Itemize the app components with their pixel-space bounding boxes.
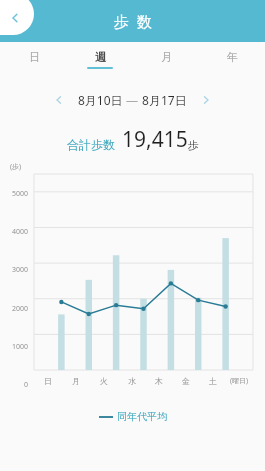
button[interactable]: Previous period [48, 89, 70, 111]
staticText: 合計歩数 [67, 137, 115, 152]
button[interactable]: 年 [199, 42, 265, 77]
staticText: 水 [128, 376, 136, 386]
staticText: 週 [95, 50, 106, 64]
button[interactable]: 日 [0, 42, 67, 77]
staticText: 2000 [0, 304, 28, 314]
button[interactable]: Back [0, 0, 34, 35]
staticText: 金 [182, 376, 190, 386]
staticText: 月 [161, 50, 172, 64]
staticText: 19,415 [122, 125, 188, 154]
staticText: 8月10日 [78, 92, 126, 108]
staticText: 4000 [0, 227, 28, 237]
staticText: 5000 [0, 189, 28, 199]
staticText: 歩 数 [114, 11, 152, 31]
staticText: (歩) [10, 162, 22, 172]
staticText: 同年代平均 [117, 410, 167, 423]
button[interactable]: Next period [195, 89, 217, 111]
staticText: 3000 [0, 265, 28, 275]
staticText: 歩 [188, 138, 199, 152]
staticText: 土 [209, 376, 217, 386]
button[interactable]: 月 [133, 42, 199, 77]
button[interactable]: 週 [67, 42, 133, 77]
staticText: 木 [155, 376, 163, 386]
staticText: 1000 [0, 342, 28, 352]
staticText: 0 [0, 380, 28, 390]
staticText: 日 [29, 50, 40, 64]
staticText: 火 [100, 376, 108, 386]
staticText: 年 [227, 50, 238, 64]
staticText: (曜日) [230, 376, 249, 386]
staticText: 日 [44, 376, 52, 386]
staticText: 月 [72, 376, 80, 386]
staticText: 8月17日 [139, 92, 187, 108]
staticText: — [126, 92, 139, 108]
